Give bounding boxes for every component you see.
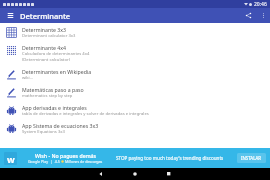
- button[interactable]: App Sistema de ecuaciones 3x3: [0, 119, 270, 137]
- staticText: w: [7, 153, 15, 165]
- staticText: INSTALAR: [241, 155, 262, 161]
- button[interactable]: Recent apps: [152, 168, 186, 180]
- staticText: mathematics step by step: [22, 93, 73, 99]
- button[interactable]: Matemáticas paso a paso: [0, 83, 270, 101]
- button[interactable]: Determinantes en Wikipedia: [0, 65, 270, 83]
- button[interactable]: Open navigation drawer: [0, 8, 20, 23]
- staticText: 20:46: [254, 1, 267, 8]
- button[interactable]: App derivadas e integrales: [0, 101, 270, 119]
- button[interactable]: w: [0, 148, 270, 168]
- staticText: Determinante 4x4: [22, 44, 66, 51]
- staticText: System Equations 3x3: [22, 129, 65, 135]
- button[interactable]: Determinante 4x4: [0, 41, 270, 65]
- staticText: Determinante: [20, 11, 240, 21]
- staticText: Millones de descargas: [64, 159, 103, 164]
- button[interactable]: Home: [118, 168, 152, 180]
- staticText: Calculadora de determinantes 4x4: [22, 51, 90, 57]
- staticText: Determinantes en Wikipedia: [22, 68, 92, 75]
- staticText: App Sistema de ecuaciones 3x3: [22, 122, 99, 129]
- staticText: (Determinant calculator): [22, 57, 70, 63]
- staticText: App derivadas e integrales: [22, 104, 87, 111]
- staticText: Wish - No pagues demás: [35, 152, 97, 159]
- staticText: | 4.5: [49, 159, 61, 164]
- staticText: Determinant calculator 3x3: [22, 33, 76, 39]
- staticText: Google Play: [28, 159, 49, 164]
- staticText: tabla de derivadas e integrales y solver…: [22, 111, 149, 117]
- button[interactable]: Determinante 3x3: [0, 23, 270, 41]
- staticText: STOP paying too much today's trending di…: [116, 155, 224, 161]
- staticText: Matemáticas paso a paso: [22, 86, 84, 93]
- staticText: wiki...: [22, 75, 34, 81]
- button[interactable]: Back: [84, 168, 118, 180]
- staticText: Determinante 3x3: [22, 26, 66, 33]
- button[interactable]: Share: [240, 8, 256, 23]
- button[interactable]: INSTALAR: [237, 153, 266, 163]
- button[interactable]: More options: [256, 8, 270, 23]
